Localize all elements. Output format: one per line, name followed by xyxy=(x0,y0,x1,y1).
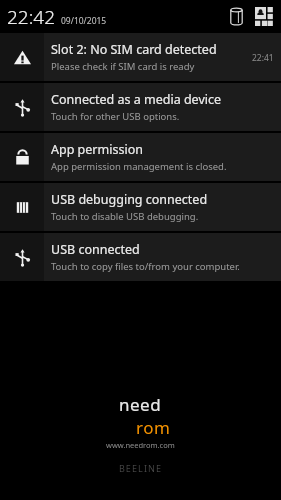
button[interactable]: No SIM card detected xyxy=(0,33,281,81)
button[interactable]: USB connected xyxy=(0,233,281,281)
staticText: need xyxy=(119,393,162,416)
staticText: Touch to copy files to/from your compute… xyxy=(51,260,240,273)
staticText: Please check if SIM card is ready xyxy=(51,60,195,73)
staticText: USB connected xyxy=(51,241,140,258)
staticText: BEELINE xyxy=(0,462,281,474)
staticText: Slot 2: No SIM card detected xyxy=(51,41,217,58)
staticText: 22:41 xyxy=(252,52,274,64)
staticText: Touch for other USB options. xyxy=(51,110,180,123)
button[interactable]: App permission xyxy=(0,133,281,181)
button[interactable]: Connected as a media device xyxy=(0,83,281,131)
staticText: App permission management is closed. xyxy=(51,160,227,173)
staticText: USB debugging connected xyxy=(51,191,208,208)
staticText: App permission xyxy=(51,141,143,158)
staticText: Touch to disable USB debugging. xyxy=(51,210,199,223)
button[interactable]: Storage xyxy=(227,7,246,26)
button[interactable]: Quick settings xyxy=(255,7,274,26)
staticText: Connected as a media device xyxy=(51,91,222,108)
button[interactable]: USB debugging connected xyxy=(0,183,281,231)
staticText: 09/10/2015 xyxy=(61,15,107,27)
staticText: rom xyxy=(136,416,171,439)
staticText: www.needrom.com xyxy=(106,440,175,450)
staticText: 22:42 xyxy=(7,4,56,30)
